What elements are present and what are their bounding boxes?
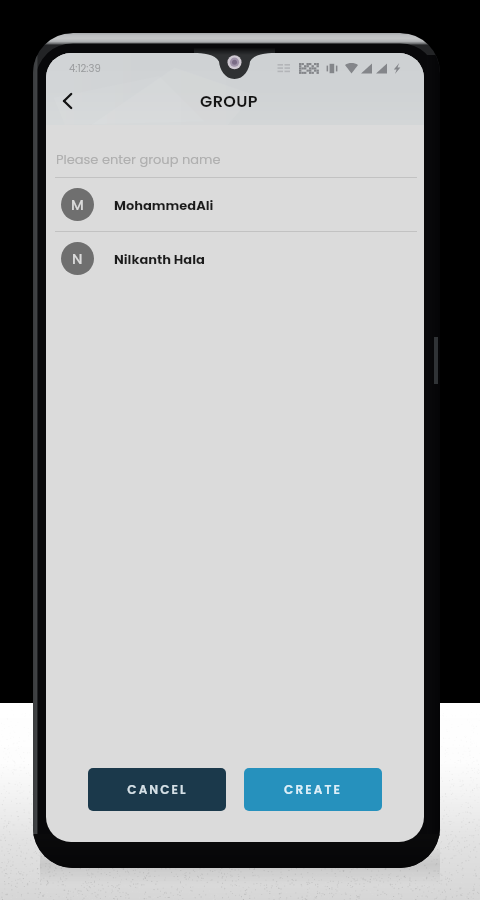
staticText: Nilkanth Hala — [114, 250, 205, 268]
staticText: 4:12:39 — [69, 61, 101, 75]
button[interactable]: CREATE — [244, 768, 382, 811]
staticText: M — [71, 195, 84, 215]
staticText: CANCEL — [127, 781, 188, 798]
staticText: MohammedAli — [114, 196, 214, 214]
button[interactable]: CANCEL — [88, 768, 226, 811]
button[interactable]: N — [46, 232, 424, 285]
staticText: GROUP — [200, 90, 258, 112]
button[interactable]: M — [46, 178, 424, 231]
staticText: N — [72, 249, 83, 269]
staticText: Please enter group name — [56, 150, 221, 168]
button[interactable]: Back — [46, 79, 90, 123]
button[interactable]: Please enter group name — [56, 141, 414, 177]
staticText: CREATE — [284, 781, 342, 798]
